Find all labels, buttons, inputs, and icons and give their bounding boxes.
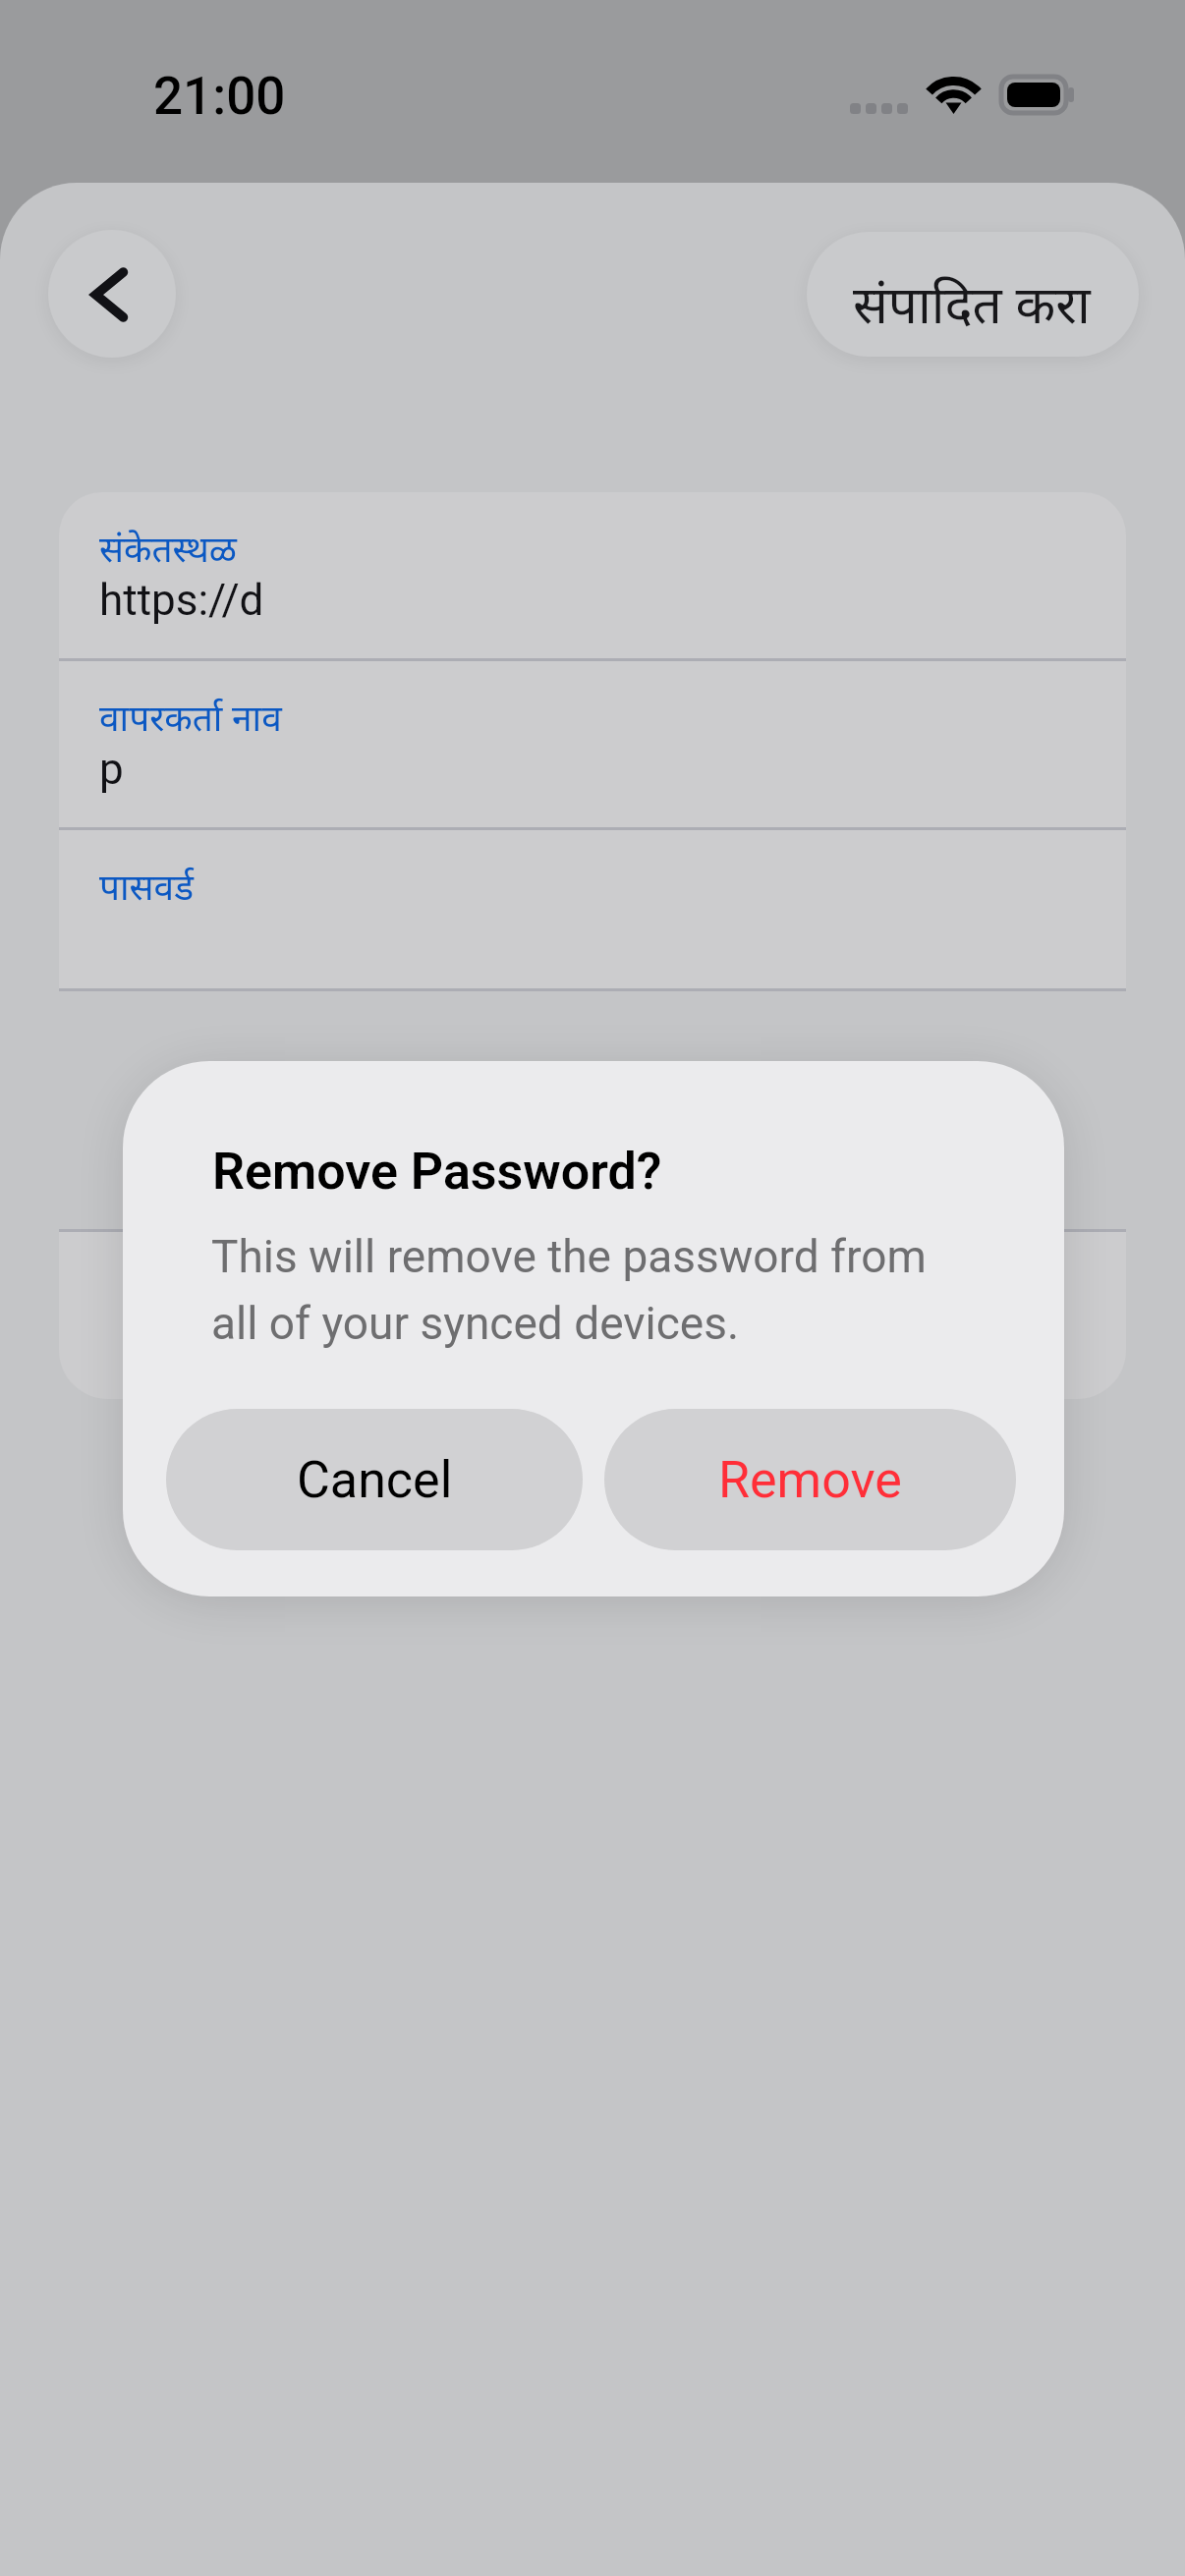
button[interactable]: Back [48, 230, 176, 358]
button[interactable]: पासवर्ड [59, 830, 1126, 988]
staticText: 21:00 [153, 66, 286, 127]
staticText: Cancel [297, 1450, 453, 1510]
button[interactable]: संकेतस्थळ [59, 492, 1126, 658]
staticText: पासवर्ड [99, 868, 194, 915]
staticText: https://d [99, 575, 264, 626]
staticText: वापरकर्ता नाव [99, 699, 282, 746]
staticText: This will remove the password from all o… [211, 1230, 958, 1350]
button[interactable]: Cancel [166, 1409, 583, 1550]
staticText: Remove Password? [212, 1142, 662, 1202]
button[interactable]: वापरकर्ता नाव [59, 661, 1126, 827]
staticText: p [99, 744, 124, 795]
button[interactable]: Remove [604, 1409, 1016, 1550]
staticText: Remove [718, 1450, 902, 1510]
button[interactable]: संपादित करा [807, 232, 1139, 357]
staticText: संपादित करा [853, 277, 1091, 345]
staticText: संकेतस्थळ [99, 530, 237, 577]
